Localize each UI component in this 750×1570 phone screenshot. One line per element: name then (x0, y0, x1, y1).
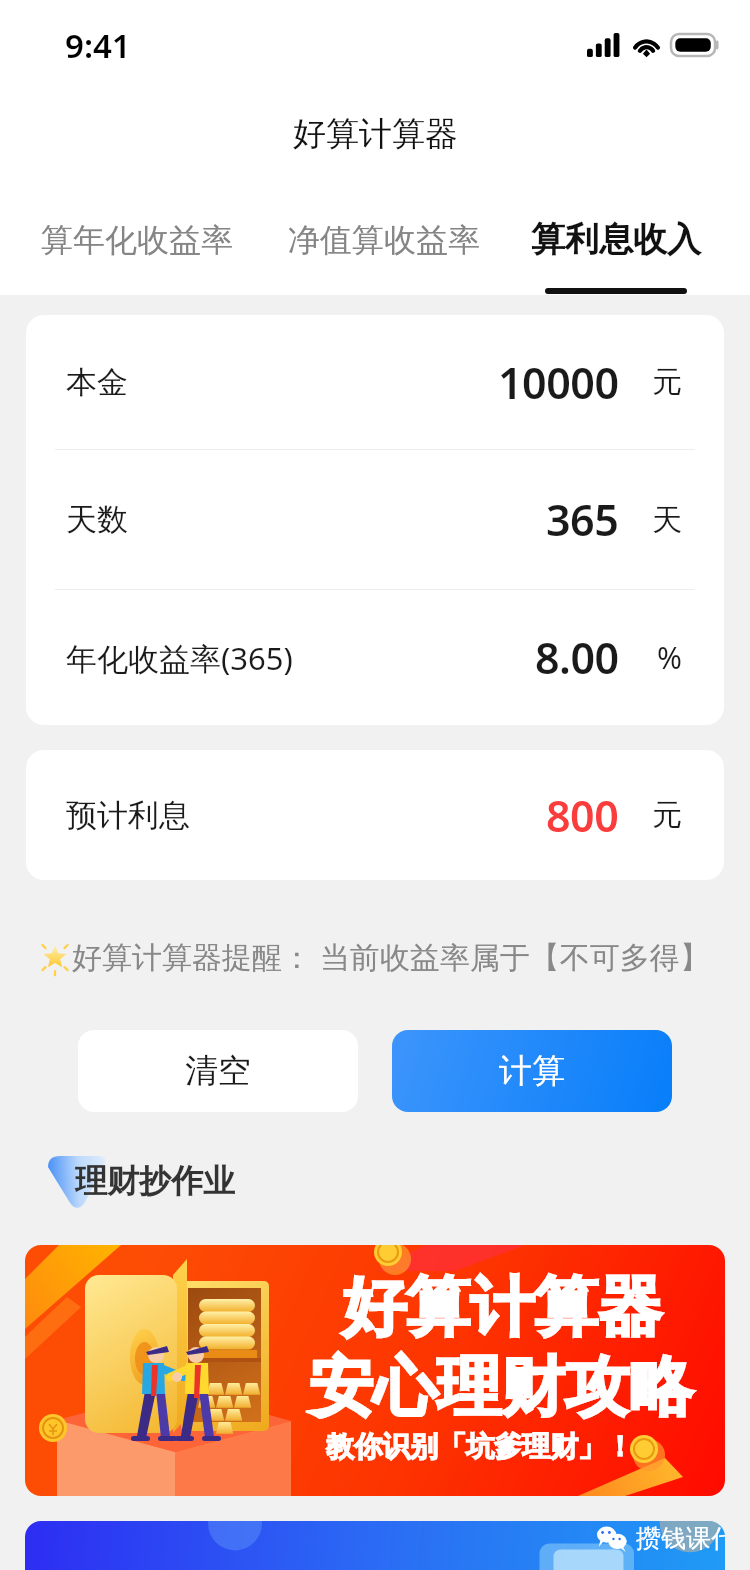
staticText: 本金 (66, 363, 128, 402)
staticText: 365 (546, 490, 619, 549)
staticText: 元 (652, 796, 682, 834)
staticText: 9:41 (65, 23, 131, 68)
button[interactable]: 预计利息 (26, 750, 724, 880)
button[interactable]: 净值算收益率 (275, 205, 493, 275)
staticText: 攒钱课代表 (636, 1523, 725, 1554)
staticText: 预计利息 (66, 796, 190, 835)
staticText: 10000 (498, 353, 619, 412)
staticText: 算年化收益率 (41, 220, 233, 260)
other: WeChat (597, 1526, 628, 1552)
button[interactable]: 算年化收益率 (28, 205, 245, 275)
staticText: 天数 (66, 500, 128, 539)
button[interactable]: 计算 (392, 1030, 672, 1112)
staticText: 8.00 (535, 628, 619, 687)
staticText: 净值算收益率 (288, 220, 480, 260)
staticText: 好算计算器 (342, 1267, 662, 1348)
button[interactable]: 算利息收入 (521, 200, 710, 295)
button[interactable]: 清空 (78, 1030, 358, 1112)
button[interactable]: 天数 (26, 450, 724, 589)
button[interactable]: 年化收益率(365) (26, 590, 724, 725)
staticText: % (657, 637, 682, 678)
staticText: 教你识别「坑爹理财」！ (326, 1429, 634, 1464)
staticText: 800 (546, 786, 619, 845)
staticText: 好算计算器提醒： 当前收益率属于【不可多得】 (72, 936, 710, 977)
staticText: 天 (652, 501, 682, 539)
staticText: 清空 (185, 1050, 251, 1092)
button[interactable]: WeChat (25, 1521, 725, 1570)
button[interactable]: 好算计算器 (25, 1245, 725, 1496)
staticText: 年化收益率(365) (66, 637, 293, 679)
staticText: 元 (652, 363, 682, 401)
staticText: 算利息收入 (531, 218, 701, 261)
button[interactable]: 本金 (26, 315, 724, 449)
staticText: 计算 (499, 1050, 565, 1092)
staticText: 理财抄作业 (75, 1161, 235, 1201)
staticText: 好算计算器 (293, 113, 458, 155)
staticText: 安心理财攻略 (309, 1347, 693, 1428)
